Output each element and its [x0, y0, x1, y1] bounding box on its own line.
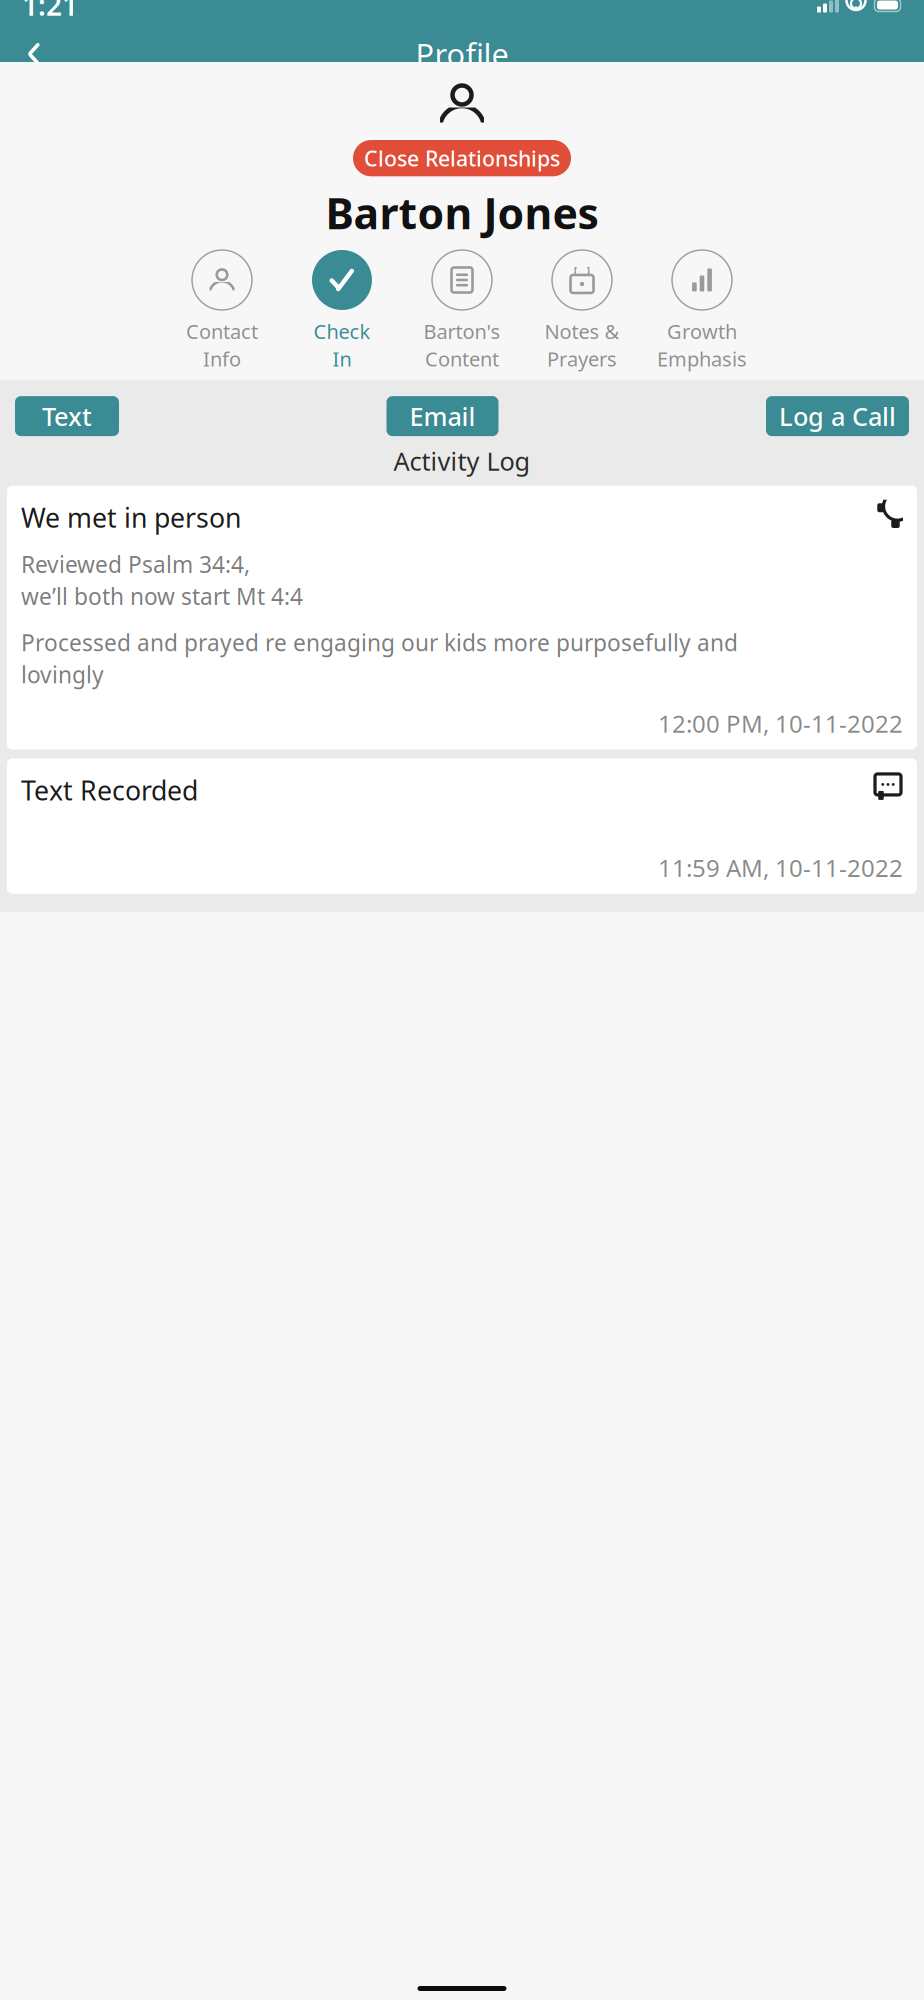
staticText: Profile: [415, 34, 508, 74]
button[interactable]: Log a Call: [766, 396, 909, 436]
button[interactable]: Notes &: [522, 249, 642, 372]
staticText: Barton's: [423, 318, 500, 345]
staticText: Barton Jones: [325, 184, 598, 241]
staticText: Content: [425, 345, 499, 372]
staticText: Prayers: [547, 345, 617, 372]
staticText: Close Relationships: [364, 144, 560, 172]
staticText: Emphasis: [657, 345, 747, 372]
button[interactable]: Contact: [162, 249, 282, 372]
staticText: Text: [42, 399, 92, 433]
staticText: Info: [203, 345, 241, 372]
staticText: In: [332, 345, 351, 372]
staticText: Processed and prayed re engaging our kid…: [21, 627, 738, 657]
staticText: lovingly: [21, 659, 104, 690]
button[interactable]: Email: [386, 396, 498, 436]
staticText: Contact: [186, 318, 258, 345]
staticText: Reviewed Psalm 34:4,: [21, 549, 250, 579]
staticText: Notes &: [544, 318, 619, 345]
staticText: Growth: [667, 318, 737, 345]
staticText: Text Recorded: [21, 772, 198, 808]
button[interactable]: Text: [15, 396, 119, 436]
staticText: Check: [313, 318, 370, 345]
staticText: 11:59 AM, 10-11-2022: [658, 852, 903, 884]
staticText: Log a Call: [779, 399, 896, 433]
staticText: Activity Log: [393, 444, 530, 478]
button[interactable]: Back: [14, 34, 54, 74]
staticText: 12:00 PM, 10-11-2022: [658, 708, 903, 739]
staticText: Email: [409, 399, 475, 433]
button[interactable]: Barton's: [402, 249, 522, 372]
staticText: We met in person: [21, 500, 241, 535]
button[interactable]: Check: [282, 249, 402, 372]
staticText: we’ll both now start Mt 4:4: [21, 581, 303, 611]
staticText: 1:21: [22, 0, 78, 24]
button[interactable]: Growth: [642, 249, 762, 372]
